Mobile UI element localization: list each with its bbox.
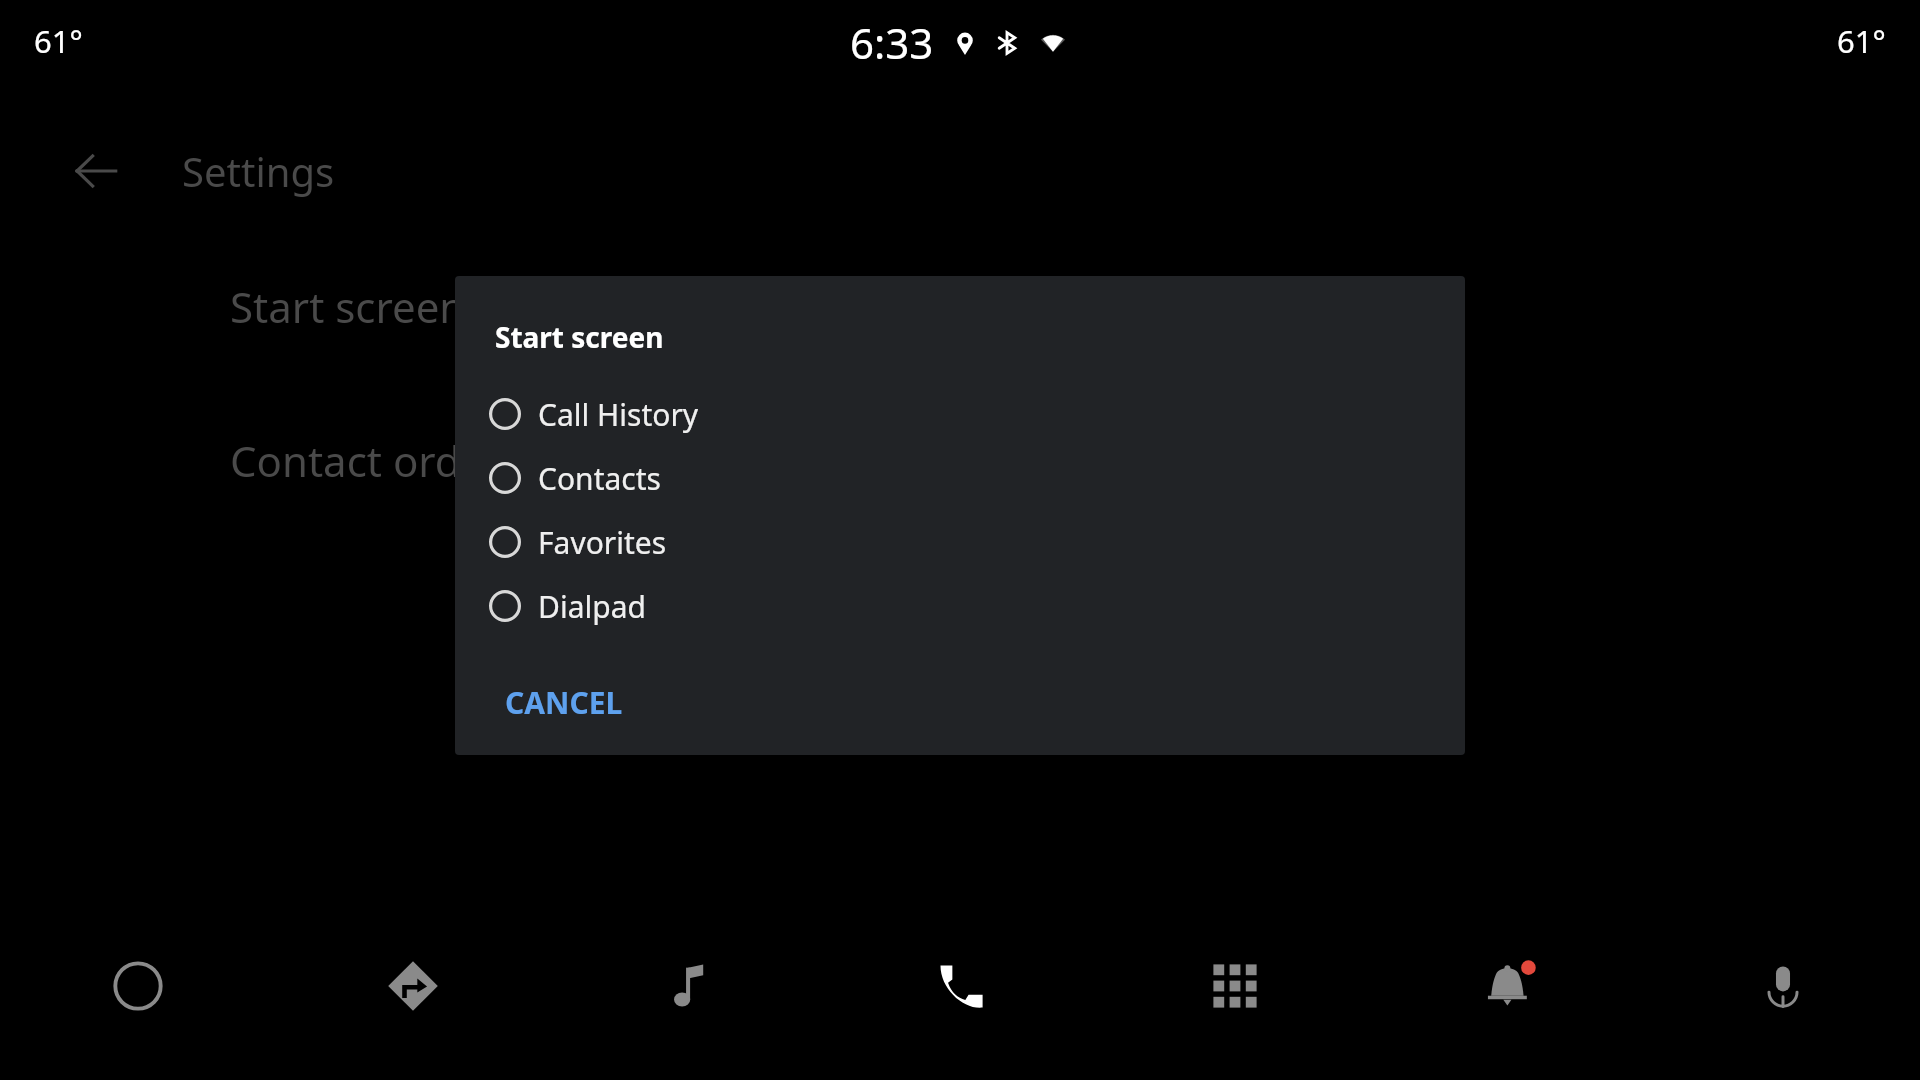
button[interactable]: Dialpad — [455, 574, 1465, 638]
staticText: 61° — [1837, 20, 1886, 62]
staticText: Contact order — [230, 432, 502, 489]
staticText: 61° — [34, 20, 83, 62]
button[interactable]: Call History — [455, 382, 1465, 446]
button[interactable]: Apps — [1098, 900, 1372, 1080]
button[interactable]: Media — [550, 900, 824, 1080]
staticText: 6:33 — [850, 14, 934, 71]
button[interactable]: CANCEL — [479, 668, 649, 737]
button[interactable]: Assistant — [1646, 900, 1920, 1080]
staticText: Favorites — [538, 522, 667, 563]
button[interactable]: Back — [60, 135, 132, 207]
staticText: Start screen — [495, 318, 664, 356]
button[interactable]: Notifications — [1372, 900, 1646, 1080]
button[interactable]: Phone — [824, 900, 1098, 1080]
button[interactable]: Contacts — [455, 446, 1465, 510]
staticText: Dialpad — [538, 586, 646, 627]
staticText: Contacts — [538, 458, 661, 499]
button[interactable]: Home — [0, 900, 275, 1080]
staticText: Start screen — [230, 278, 466, 335]
button[interactable]: Navigation — [275, 900, 550, 1080]
staticText: CANCEL — [505, 682, 623, 723]
button[interactable]: Favorites — [455, 510, 1465, 574]
staticText: Call History — [538, 394, 699, 435]
staticText: Settings — [182, 144, 335, 198]
